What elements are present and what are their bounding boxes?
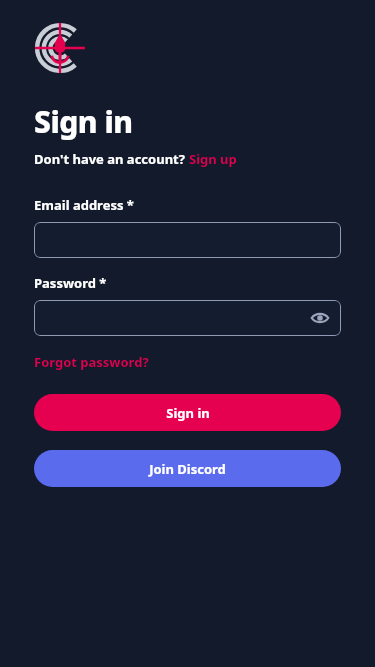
button[interactable]: Sign in	[34, 394, 341, 431]
button[interactable]: Join Discord	[34, 450, 341, 487]
staticText: Sign in	[166, 404, 210, 422]
staticText: Sign up	[189, 150, 237, 168]
button[interactable]: Sign up	[189, 150, 237, 168]
staticText: Forgot password?	[34, 353, 149, 371]
other: App logo	[34, 22, 86, 74]
staticText: Join Discord	[149, 460, 226, 478]
button[interactable]: Email address input	[34, 222, 341, 258]
staticText: Email address *	[34, 196, 134, 214]
staticText: Password *	[34, 274, 107, 292]
button[interactable]: Show password	[307, 305, 333, 331]
staticText: Don't have an account?	[34, 150, 189, 168]
staticText: Sign in	[34, 101, 133, 142]
button[interactable]: Password input	[34, 300, 341, 336]
button[interactable]: Forgot password?	[34, 353, 149, 371]
